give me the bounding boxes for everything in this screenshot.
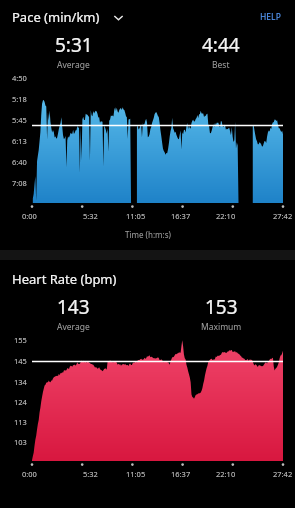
staticText: 5:32: [83, 211, 98, 221]
staticText: 4:50: [12, 73, 27, 83]
staticText: 0:00: [22, 211, 37, 221]
staticText: 4:44: [202, 32, 240, 58]
staticText: 27:42: [273, 211, 293, 221]
staticText: 155: [14, 335, 27, 345]
staticText: 143: [57, 294, 90, 320]
staticText: 113: [14, 417, 27, 427]
staticText: 27:42: [273, 469, 293, 479]
staticText: Best: [212, 59, 230, 71]
staticText: 5:31: [55, 32, 93, 58]
staticText: 0:00: [22, 469, 37, 479]
staticText: 5:18: [12, 94, 27, 104]
staticText: 145: [14, 356, 27, 366]
staticText: 7:08: [12, 178, 27, 188]
staticText: 5:45: [12, 115, 27, 125]
staticText: Time (h:m:s): [125, 229, 171, 240]
staticText: HELP: [260, 11, 281, 23]
button[interactable]: HELP: [256, 9, 285, 25]
staticText: 16:37: [171, 469, 191, 479]
staticText: 124: [14, 397, 27, 407]
staticText: Pace (min/km): [12, 8, 100, 26]
staticText: Average: [57, 321, 90, 333]
staticText: 11:05: [126, 469, 146, 479]
staticText: 103: [14, 437, 27, 447]
button[interactable]: Change metric: [109, 8, 127, 26]
staticText: 22:10: [216, 469, 236, 479]
staticText: 6:13: [12, 136, 27, 146]
staticText: Average: [57, 59, 90, 71]
staticText: 5:32: [83, 469, 98, 479]
staticText: 153: [205, 294, 238, 320]
staticText: 22:10: [216, 211, 236, 221]
staticText: 134: [14, 377, 27, 387]
staticText: 11:05: [126, 211, 146, 221]
staticText: Heart Rate (bpm): [12, 270, 117, 288]
staticText: Maximum: [201, 321, 242, 333]
staticText: 6:40: [12, 157, 27, 167]
staticText: 16:37: [171, 211, 191, 221]
